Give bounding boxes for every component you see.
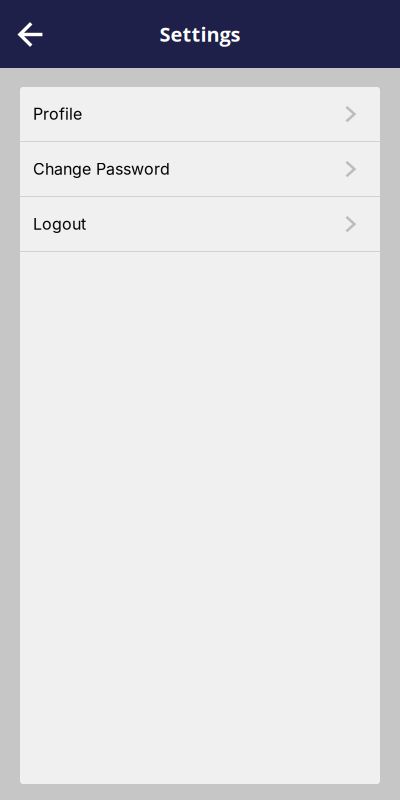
button[interactable]: Back [0,0,55,68]
staticText: Settings [159,20,240,48]
button[interactable]: Profile [20,87,380,141]
staticText: Change Password [33,159,170,179]
button[interactable]: Logout [20,197,380,251]
button[interactable]: Change Password [20,142,380,196]
staticText: Logout [33,214,86,234]
staticText: Profile [33,104,82,124]
